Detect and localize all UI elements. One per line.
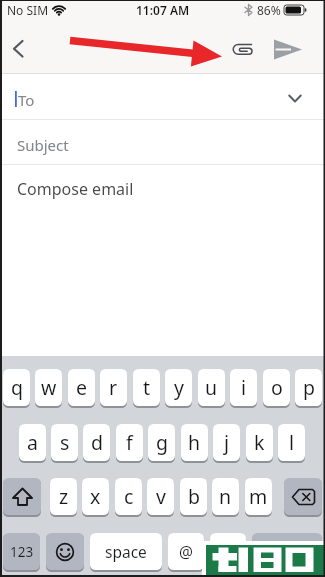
button[interactable]: a	[19, 424, 46, 461]
staticText: t	[143, 374, 151, 401]
staticText: l	[289, 429, 295, 456]
staticText: d	[91, 429, 103, 456]
staticText: 123	[10, 543, 34, 561]
staticText: m	[249, 483, 268, 510]
staticText: c	[124, 483, 134, 510]
button[interactable]: i	[230, 369, 257, 406]
staticText: 86%	[257, 2, 281, 18]
button[interactable]	[0, 119, 325, 164]
staticText: o	[271, 374, 283, 401]
staticText: w	[41, 374, 57, 401]
button[interactable]: d	[83, 424, 110, 461]
staticText: No SIM	[7, 2, 49, 18]
button[interactable]: g	[148, 424, 175, 461]
staticText: space	[105, 541, 147, 562]
staticText: To	[18, 90, 35, 110]
button[interactable]: m	[245, 478, 272, 515]
staticText: @	[179, 541, 193, 562]
staticText: f	[126, 429, 133, 456]
staticText: .	[226, 541, 231, 563]
button[interactable]	[273, 38, 303, 61]
button[interactable]: t	[133, 369, 160, 406]
button[interactable]: b	[180, 478, 207, 515]
button[interactable]: n	[212, 478, 239, 515]
button[interactable]: l	[278, 424, 305, 461]
staticText: i	[241, 374, 247, 401]
staticText: Subject	[17, 135, 69, 155]
button[interactable]: p	[295, 369, 322, 406]
staticText: g	[156, 429, 168, 456]
staticText: 11:07 AM	[136, 2, 190, 18]
button[interactable]: c	[115, 478, 142, 515]
button[interactable]: j	[213, 424, 240, 461]
staticText: a	[27, 429, 38, 456]
button[interactable]: o	[263, 369, 290, 406]
button[interactable]: space	[90, 533, 162, 570]
staticText: v	[156, 483, 166, 510]
staticText: k	[254, 429, 265, 456]
button[interactable]: w	[35, 369, 62, 406]
staticText: x	[90, 483, 101, 510]
button[interactable]: v	[147, 478, 174, 515]
button[interactable]: u	[198, 369, 225, 406]
button[interactable]	[284, 478, 322, 515]
button[interactable]	[46, 533, 84, 570]
staticText: b	[188, 483, 200, 510]
button[interactable]: e	[68, 369, 95, 406]
staticText: Compose email	[17, 178, 134, 200]
staticText: r	[109, 374, 118, 401]
button[interactable]	[0, 73, 325, 119]
button[interactable]: q	[3, 369, 30, 406]
button[interactable]: s	[51, 424, 78, 461]
staticText: q	[11, 374, 23, 401]
button[interactable]: f	[116, 424, 143, 461]
button[interactable]: r	[100, 369, 127, 406]
staticText: s	[60, 429, 70, 456]
staticText: p	[303, 374, 315, 401]
button[interactable]	[252, 533, 322, 570]
button[interactable]: y	[165, 369, 192, 406]
staticText: e	[76, 374, 87, 401]
button[interactable]	[229, 37, 255, 61]
button[interactable]: z	[50, 478, 77, 515]
button[interactable]	[3, 478, 41, 515]
staticText: h	[188, 429, 201, 456]
button[interactable]: k	[246, 424, 273, 461]
staticText: z	[59, 483, 69, 510]
staticText: j	[224, 429, 230, 456]
staticText: n	[219, 483, 232, 510]
button[interactable]: h	[181, 424, 208, 461]
button[interactable]: x	[82, 478, 109, 515]
button[interactable]	[6, 36, 32, 62]
button[interactable]: @	[168, 533, 204, 570]
button[interactable]: 123	[3, 533, 40, 570]
staticText: u	[205, 374, 218, 401]
button[interactable]: .	[210, 533, 246, 570]
staticText: y	[174, 374, 184, 401]
